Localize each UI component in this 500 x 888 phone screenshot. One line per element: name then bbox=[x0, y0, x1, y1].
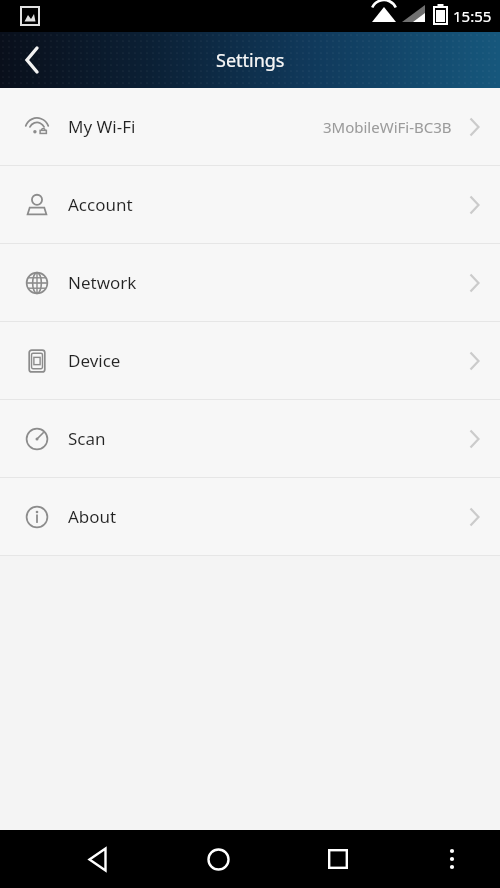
staticText: 15:55 bbox=[453, 6, 492, 26]
button[interactable]: Back bbox=[0, 32, 64, 88]
button[interactable]: My Wi-Fi bbox=[0, 88, 500, 166]
staticText: Network bbox=[68, 271, 137, 294]
staticText: Account bbox=[68, 193, 133, 216]
button[interactable]: Account bbox=[0, 166, 500, 244]
staticText: Settings bbox=[216, 48, 285, 73]
staticText: About bbox=[68, 505, 117, 528]
button[interactable]: Scan bbox=[0, 400, 500, 478]
button[interactable]: Home bbox=[192, 833, 244, 885]
staticText: Scan bbox=[68, 427, 106, 450]
staticText: Device bbox=[68, 349, 121, 372]
button[interactable]: Network bbox=[0, 244, 500, 322]
button[interactable]: Device bbox=[0, 322, 500, 400]
button[interactable]: About bbox=[0, 478, 500, 556]
button[interactable]: Recent apps bbox=[312, 833, 364, 885]
button[interactable]: Back bbox=[72, 833, 124, 885]
staticText: My Wi-Fi bbox=[68, 115, 136, 138]
staticText: 3MobileWiFi-BC3B bbox=[323, 117, 452, 137]
button[interactable]: More options bbox=[432, 839, 472, 879]
